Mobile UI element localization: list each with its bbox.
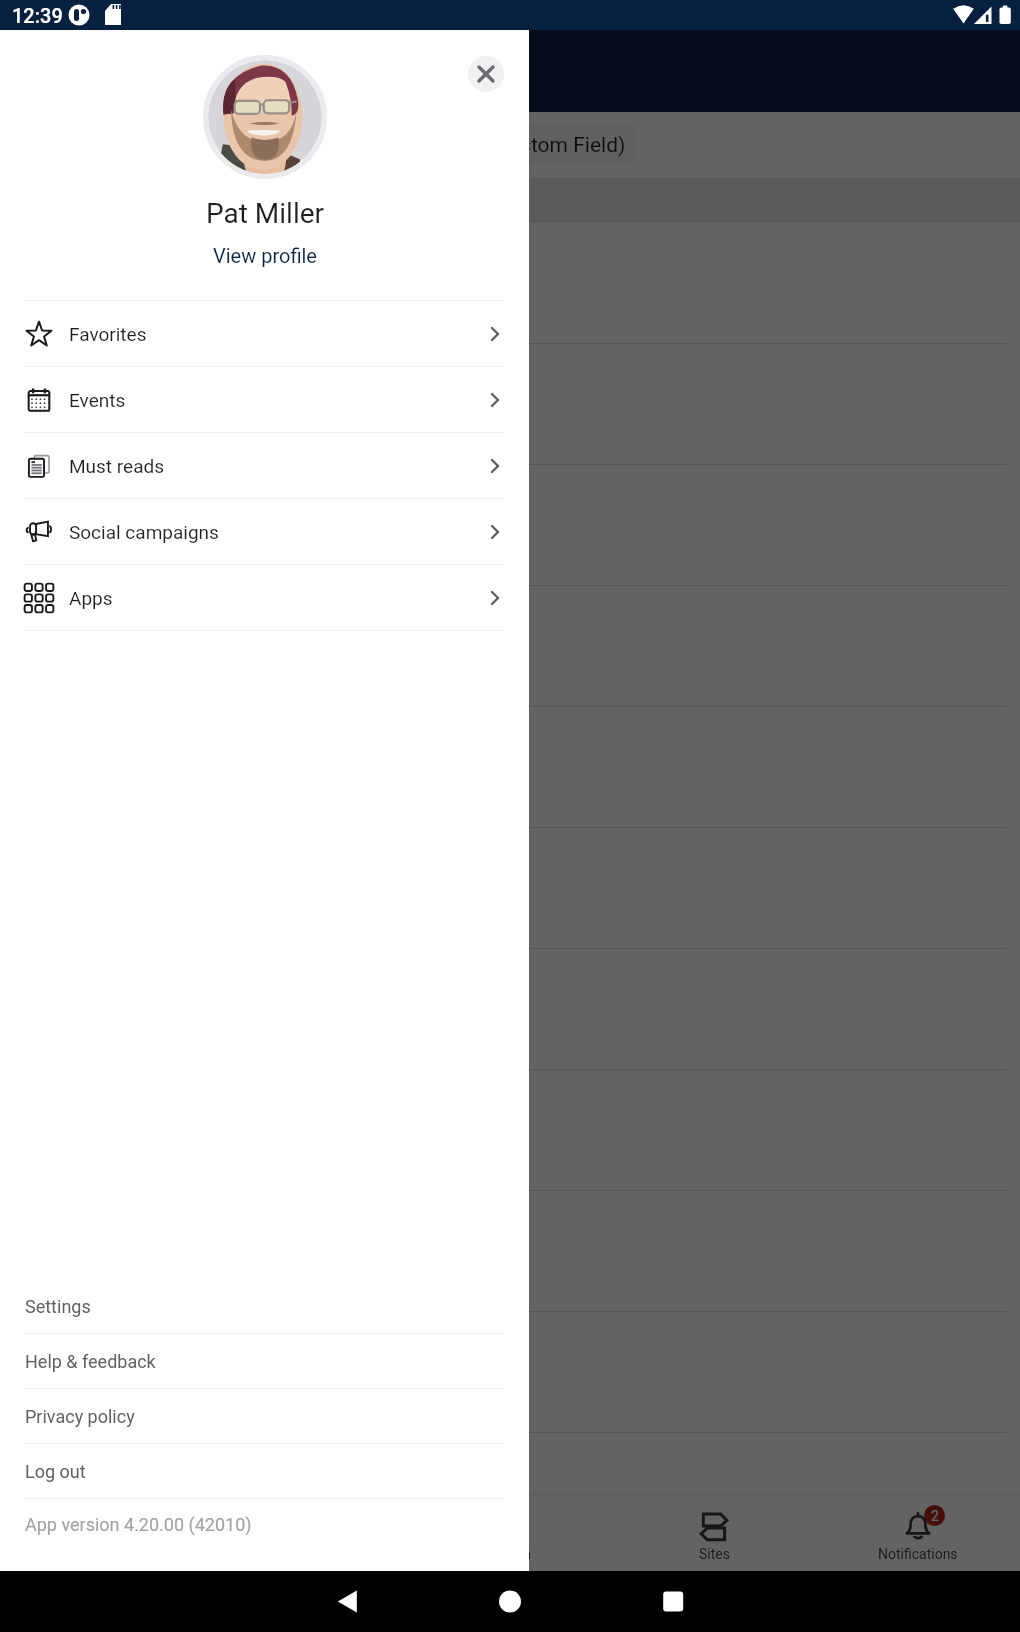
button[interactable]: Privacy policy (0, 1389, 529, 1443)
button[interactable]: Search (408, 1494, 612, 1571)
button[interactable]: Must reads (0, 433, 529, 498)
button[interactable]: Feed (204, 1494, 408, 1571)
staticText: 2 (931, 1508, 939, 1524)
button[interactable]: View profile (207, 242, 323, 269)
staticText: App version 4.20.00 (42010) (25, 1514, 252, 1535)
staticText: Notifications (878, 1546, 958, 1562)
staticText: Apps (69, 587, 113, 609)
button[interactable]: Home (0, 1494, 204, 1571)
button[interactable]: 2 (816, 1494, 1020, 1571)
staticText: Log out (25, 1461, 86, 1482)
button[interactable]: Settings (0, 1279, 529, 1333)
staticText: Search (488, 1546, 532, 1562)
button[interactable]: Favorites (0, 301, 529, 366)
staticText: Events (69, 389, 126, 411)
staticText: Privacy policy (25, 1406, 135, 1427)
staticText: Social campaigns (69, 521, 219, 543)
staticText: Sites (699, 1546, 730, 1562)
button[interactable]: Log out (0, 1444, 529, 1498)
button[interactable]: Close (468, 56, 504, 92)
staticText: Settings (25, 1296, 91, 1317)
button[interactable]: Sites (612, 1494, 816, 1571)
staticText: Must reads (69, 455, 164, 477)
staticText: Latest (Custom Field) (424, 133, 626, 158)
button[interactable]: Events (0, 367, 529, 432)
button[interactable]: Latest (Custom Field) (405, 125, 637, 165)
button[interactable]: Social campaigns (0, 499, 529, 564)
staticText: Pat Miller (206, 197, 325, 230)
button[interactable]: Help & feedback (0, 1334, 529, 1388)
button[interactable]: Apps (0, 565, 529, 630)
staticText: Help & feedback (25, 1351, 156, 1372)
staticText: 12:39 (12, 4, 63, 27)
staticText: Favorites (69, 323, 147, 345)
staticText: View profile (213, 244, 317, 267)
